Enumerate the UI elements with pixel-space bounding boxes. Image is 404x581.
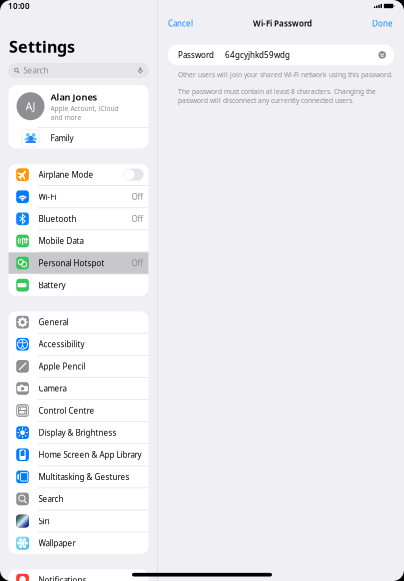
button[interactable]: Camera [8,378,148,399]
staticText: Notifications [38,575,86,581]
staticText: Cancel [168,18,193,29]
button[interactable]: Family [8,128,148,148]
staticText: The password must contain at least 8 cha… [178,87,376,105]
staticText: Alan Jones [50,91,97,103]
staticText: AJ [25,99,35,113]
button[interactable]: Search [8,488,148,510]
staticText: Settings [9,36,75,57]
button[interactable]: Wallpaper [8,532,148,554]
staticText: Display & Brightness [38,427,116,438]
staticText: Family [50,133,73,143]
staticText: Off [131,191,143,202]
button[interactable]: Bluetooth [8,208,148,230]
staticText: Control Centre [38,405,94,416]
button[interactable]: Done [372,18,393,29]
button[interactable]: General [8,311,148,333]
button[interactable]: AJ [8,85,148,127]
button[interactable]: Apple Pencil [8,356,148,377]
staticText: Bluetooth [38,213,76,224]
button[interactable]: Home Screen & App Library [8,444,148,465]
button[interactable]: Display & Brightness [8,422,148,443]
staticText: 10:00 [8,1,30,11]
staticText: Wallpaper [38,538,75,548]
button[interactable]: Cancel [168,18,193,29]
staticText: Wi-Fi Password [253,18,312,29]
button[interactable]: Airplane Mode [8,164,148,185]
button[interactable]: Clear text [378,51,386,59]
staticText: and more [50,113,81,122]
staticText: Off [131,213,143,224]
staticText: Battery [38,280,65,290]
staticText: Personal Hotspot [38,258,104,268]
staticText: Siri [38,516,49,526]
button[interactable]: Siri [8,510,148,532]
staticText: Off [131,258,143,268]
staticText: 64gcyjhkd59wdg [225,49,290,60]
staticText: General [38,317,68,327]
button[interactable]: Multitasking & Gestures [8,466,148,488]
staticText: Done [372,18,393,29]
staticText: Apple Pencil [38,361,85,372]
button[interactable]: Accessibility [8,333,148,355]
staticText: Other users will join your shared Wi-Fi … [178,70,393,79]
staticText: Search [38,494,63,504]
staticText: Mobile Data [38,236,83,246]
staticText: Multitasking & Gestures [38,471,129,482]
button[interactable]: Wi-Fi [8,186,148,207]
button[interactable]: Notifications [8,569,148,581]
staticText: Password [178,49,214,60]
staticText: Accessibility [38,339,84,349]
button[interactable]: Mobile Data [8,230,148,252]
staticText: Search [23,65,48,76]
button[interactable]: Battery [8,274,148,296]
staticText: Wi-Fi [38,191,56,202]
button[interactable]: Control Centre [8,400,148,421]
staticText: Apple Account, iCloud [50,104,118,113]
staticText: Home Screen & App Library [38,449,141,460]
staticText: Camera [38,383,66,394]
button[interactable]: Personal Hotspot [8,252,148,274]
staticText: Airplane Mode [38,169,93,180]
